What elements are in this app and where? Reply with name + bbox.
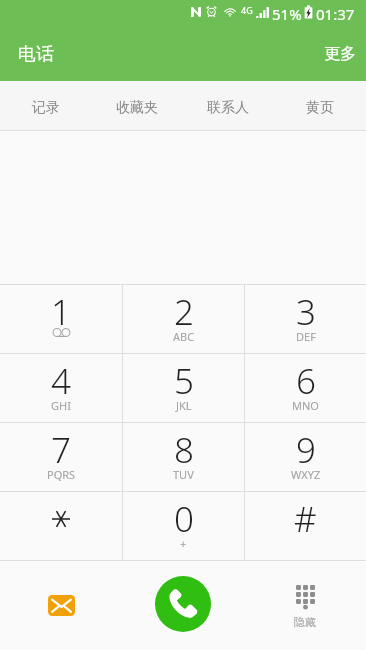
staticText: GHI: [51, 398, 71, 413]
staticText: JKL: [176, 398, 192, 413]
button[interactable]: [0, 492, 122, 560]
staticText: DEF: [296, 329, 316, 344]
button[interactable]: Call: [155, 576, 211, 632]
staticText: 5: [174, 357, 194, 405]
button[interactable]: 记录: [0, 81, 91, 130]
button[interactable]: 收藏夹: [91, 81, 182, 130]
staticText: 01:37: [316, 4, 355, 24]
button[interactable]: 5: [123, 354, 244, 422]
staticText: 4G: [241, 4, 253, 16]
button[interactable]: 4: [0, 354, 122, 422]
button[interactable]: 隐藏: [281, 584, 329, 629]
staticText: 0: [174, 495, 194, 543]
staticText: WXYZ: [291, 467, 321, 482]
staticText: PQRS: [47, 467, 76, 482]
staticText: 6: [296, 357, 316, 405]
staticText: ABC: [173, 329, 195, 344]
button[interactable]: 联系人: [182, 81, 274, 130]
button[interactable]: 8: [123, 423, 244, 491]
staticText: 4: [51, 357, 71, 405]
staticText: 1: [51, 288, 71, 336]
staticText: +: [180, 536, 187, 551]
staticText: 2: [174, 288, 194, 336]
button[interactable]: 黄页: [274, 81, 366, 130]
staticText: 电话: [18, 43, 54, 66]
staticText: 记录: [32, 99, 60, 117]
staticText: 7: [51, 426, 71, 474]
staticText: 3: [296, 288, 316, 336]
button[interactable]: 3: [245, 285, 366, 353]
staticText: 8: [174, 426, 194, 474]
button[interactable]: 6: [245, 354, 366, 422]
staticText: MNO: [292, 398, 319, 413]
staticText: 隐藏: [294, 615, 316, 629]
staticText: 更多: [324, 44, 356, 64]
button[interactable]: Message: [37, 581, 85, 629]
staticText: 9: [296, 426, 316, 474]
staticText: TUV: [173, 467, 194, 482]
staticText: #: [294, 495, 317, 543]
button[interactable]: 7: [0, 423, 122, 491]
button[interactable]: 更多: [308, 32, 366, 76]
staticText: 收藏夹: [116, 99, 158, 117]
button[interactable]: 2: [123, 285, 244, 353]
button[interactable]: #: [245, 492, 366, 560]
staticText: 黄页: [306, 99, 334, 117]
staticText: 51%: [272, 4, 302, 24]
button[interactable]: 9: [245, 423, 366, 491]
button[interactable]: 0: [123, 492, 244, 560]
staticText: 联系人: [207, 99, 249, 117]
button[interactable]: 1: [0, 285, 122, 353]
